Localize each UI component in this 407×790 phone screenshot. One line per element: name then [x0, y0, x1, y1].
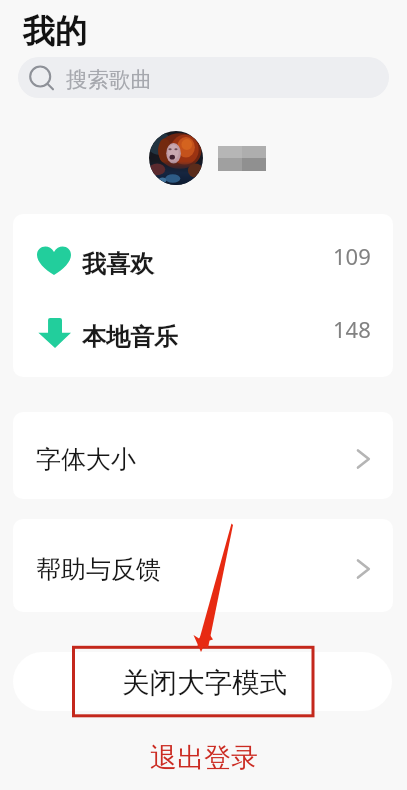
- staticText: 帮助与反馈: [36, 554, 161, 585]
- button[interactable]: 字体大小: [13, 412, 393, 499]
- button[interactable]: 帮助与反馈: [13, 519, 393, 612]
- staticText: 字体大小: [36, 444, 136, 475]
- button[interactable]: Profile, open account: [4, 131, 407, 185]
- button[interactable]: 退出登录: [0, 736, 407, 784]
- staticText: 本地音乐: [82, 322, 178, 352]
- button[interactable]: 搜索歌曲: [18, 57, 389, 98]
- button[interactable]: 本地音乐: [13, 296, 393, 369]
- staticText: 搜索歌曲: [66, 66, 152, 93]
- staticText: 退出登录: [150, 741, 258, 775]
- staticText: 148: [333, 314, 371, 344]
- staticText: 我喜欢: [82, 249, 154, 279]
- staticText: 我的: [23, 11, 87, 51]
- staticText: 关闭大字模式: [122, 666, 287, 701]
- staticText: 109: [333, 241, 371, 271]
- button[interactable]: 我喜欢: [13, 223, 393, 296]
- button[interactable]: 关闭大字模式: [13, 652, 392, 711]
